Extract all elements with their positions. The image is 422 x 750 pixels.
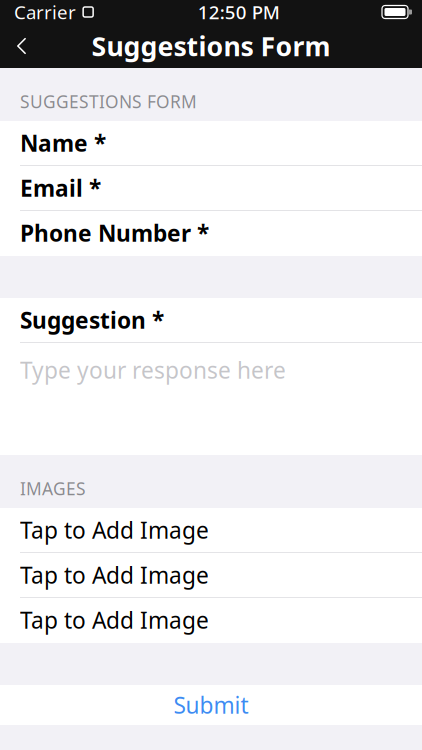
- button[interactable]: Tap to Add Image: [0, 553, 422, 598]
- button[interactable]: Name *: [0, 121, 422, 166]
- button[interactable]: Tap to Add Image: [0, 598, 422, 643]
- button[interactable]: Back: [0, 24, 44, 68]
- button[interactable]: Phone Number *: [0, 211, 422, 256]
- staticText: Carrier: [14, 0, 76, 24]
- staticText: Tap to Add Image: [20, 560, 209, 590]
- staticText: Name *: [20, 128, 106, 158]
- staticText: Phone Number *: [20, 218, 209, 248]
- staticText: IMAGES: [20, 477, 86, 500]
- button[interactable]: Email *: [0, 166, 422, 211]
- staticText: SUGGESTIONS FORM: [20, 90, 197, 113]
- button[interactable]: Suggestion *: [0, 298, 422, 343]
- staticText: Tap to Add Image: [20, 515, 209, 545]
- button[interactable]: Tap to Add Image: [0, 508, 422, 553]
- button[interactable]: Submit: [0, 685, 422, 725]
- button[interactable]: Type your response here: [0, 343, 422, 455]
- staticText: Email *: [20, 173, 101, 203]
- staticText: Suggestions Form: [91, 28, 330, 64]
- staticText: Tap to Add Image: [20, 605, 209, 635]
- staticText: Suggestion *: [20, 305, 164, 335]
- staticText: 12:50 PM: [198, 0, 280, 24]
- staticText: Submit: [173, 690, 248, 720]
- staticText: Type your response here: [20, 355, 286, 385]
